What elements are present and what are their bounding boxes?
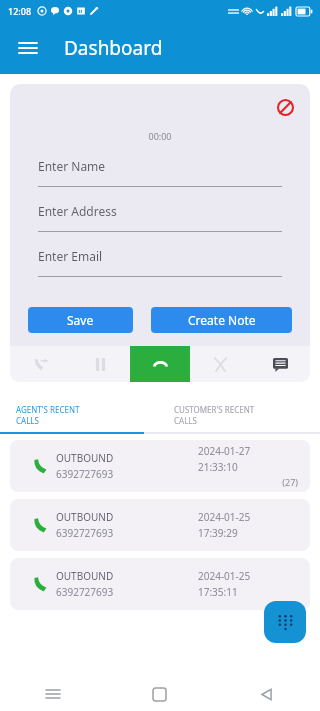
staticText: OUTBOUND [56, 569, 114, 583]
staticText: AGENT'S RECENT CALLS [16, 404, 80, 426]
staticText: 2024-01-27 [198, 444, 251, 458]
button[interactable]: Save [28, 307, 133, 333]
button[interactable]: Hold call [70, 346, 130, 382]
staticText: 00:00 [10, 130, 310, 142]
staticText: 2024-01-25 [198, 510, 251, 524]
staticText: 21:33:10 [198, 460, 238, 474]
button[interactable]: Merge call [190, 346, 250, 382]
staticText: CUSTOMER'S RECENT CALLS [174, 404, 255, 426]
button[interactable]: Back [213, 677, 320, 711]
button[interactable]: AGENT'S RECENT CALLS [0, 398, 160, 432]
button[interactable]: Open dialpad [264, 601, 306, 643]
button[interactable]: Create Note [151, 307, 292, 333]
staticText: Save [67, 312, 94, 328]
staticText: (27) [198, 476, 298, 488]
staticText: 2024-01-25 [198, 569, 251, 583]
staticText: Enter Name [38, 158, 106, 174]
staticText: 6392727693 [56, 467, 114, 481]
button[interactable]: OUTBOUND [10, 499, 310, 551]
button[interactable]: Answer call [130, 346, 190, 382]
staticText: OUTBOUND [56, 510, 114, 524]
button[interactable]: OUTBOUND [10, 440, 310, 492]
staticText: 6392727693 [56, 526, 114, 540]
staticText: 17:35:11 [198, 585, 238, 599]
staticText: OUTBOUND [56, 451, 114, 465]
button[interactable]: Transfer call [10, 346, 70, 382]
staticText: Enter Email [38, 248, 103, 264]
button[interactable]: Messages [250, 346, 310, 382]
button[interactable]: CUSTOMER'S RECENT CALLS [160, 398, 320, 432]
button[interactable]: Home [106, 677, 213, 711]
staticText: Dashboard [64, 35, 163, 61]
staticText: 17:39:29 [198, 526, 238, 540]
staticText: Create Note [188, 312, 256, 328]
staticText: 6392727693 [56, 585, 114, 599]
staticText: 12:08 [8, 5, 32, 17]
button[interactable]: Open navigation menu [10, 30, 46, 66]
staticText: Enter Address [38, 203, 117, 219]
button[interactable]: Block call [272, 94, 298, 120]
button[interactable]: Recent apps [0, 677, 106, 711]
button[interactable]: OUTBOUND [10, 558, 310, 610]
